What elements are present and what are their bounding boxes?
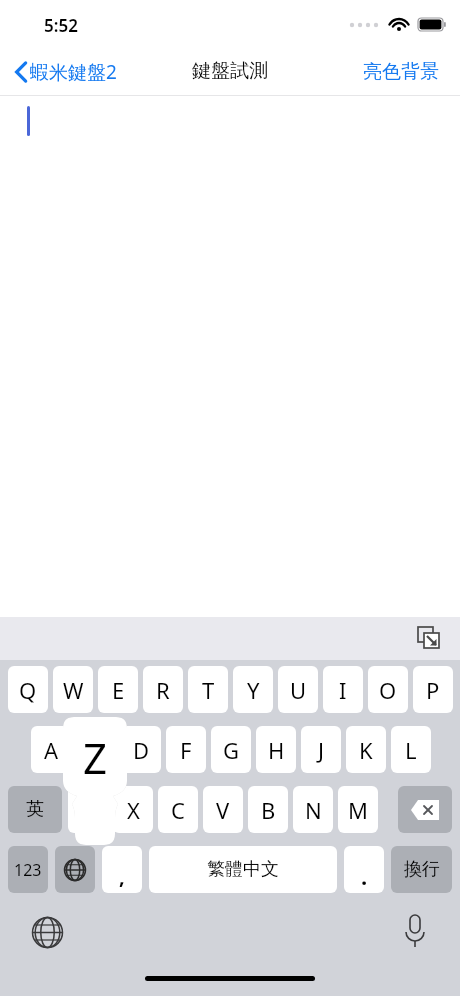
button[interactable]: Next keyboard (55, 846, 95, 893)
staticText: E (112, 675, 125, 705)
button[interactable]: Q (8, 666, 48, 713)
button[interactable]: . (344, 846, 384, 893)
button[interactable]: 換行 (391, 846, 452, 893)
staticText: K (359, 735, 373, 765)
staticText: H (268, 735, 285, 765)
staticText: X (127, 795, 140, 825)
button[interactable]: L (391, 726, 431, 773)
staticText: . (361, 861, 368, 891)
staticText: Y (247, 675, 260, 705)
button[interactable]: Switch keyboard layout (408, 619, 452, 659)
staticText: R (156, 675, 170, 705)
button[interactable]: G (211, 726, 251, 773)
button[interactable]: O (368, 666, 408, 713)
staticText: D (133, 735, 150, 765)
button[interactable]: M (338, 786, 378, 833)
button[interactable]: S (76, 726, 116, 773)
staticText: V (216, 795, 230, 825)
staticText: C (171, 795, 185, 825)
button[interactable]: X (113, 786, 153, 833)
staticText: 蝦米鍵盤2 (30, 59, 117, 85)
staticText: 繁體中文 (207, 858, 279, 881)
staticText: O (379, 675, 397, 705)
button[interactable]: 亮色背景 (352, 53, 450, 91)
button[interactable]: U (278, 666, 318, 713)
button[interactable]: D (121, 726, 161, 773)
staticText: 換行 (404, 858, 440, 881)
staticText: 亮色背景 (363, 60, 439, 84)
button[interactable]: Dictation (390, 907, 440, 957)
button[interactable]: T (188, 666, 228, 713)
button[interactable]: J (301, 726, 341, 773)
button[interactable]: A (31, 726, 71, 773)
staticText: B (261, 795, 276, 825)
button[interactable]: P (413, 666, 453, 713)
staticText: , (119, 863, 125, 890)
staticText: 5:52 (44, 14, 78, 37)
button[interactable]: C (158, 786, 198, 833)
staticText: P (426, 675, 440, 705)
staticText: 123 (14, 859, 42, 881)
staticText: J (318, 735, 325, 765)
button[interactable]: N (293, 786, 333, 833)
button[interactable]: V (203, 786, 243, 833)
button[interactable]: Z (60, 729, 130, 784)
staticText: I (339, 675, 347, 705)
staticText: T (202, 675, 215, 705)
staticText: M (348, 795, 368, 825)
button[interactable]: F (166, 726, 206, 773)
button[interactable]: W (53, 666, 93, 713)
staticText: G (223, 735, 240, 765)
button[interactable]: I (323, 666, 363, 713)
staticText: U (290, 675, 307, 705)
staticText: 鍵盤試測 (0, 59, 460, 996)
button[interactable]: Y (233, 666, 273, 713)
staticText: F (180, 735, 192, 765)
button[interactable]: 英 (8, 786, 62, 833)
button[interactable]: 蝦米鍵盤2 (8, 53, 138, 91)
staticText: S (90, 735, 103, 765)
staticText: N (305, 795, 322, 825)
button[interactable]: K (346, 726, 386, 773)
staticText: 英 (26, 798, 44, 821)
button[interactable]: Backspace (398, 786, 452, 833)
staticText: Q (19, 675, 37, 705)
staticText: A (44, 735, 59, 765)
button[interactable]: , (102, 846, 142, 893)
button[interactable]: B (248, 786, 288, 833)
staticText: L (405, 735, 417, 765)
button[interactable]: R (143, 666, 183, 713)
button[interactable]: E (98, 666, 138, 713)
staticText: W (63, 675, 84, 705)
button[interactable]: 繁體中文 (149, 846, 337, 893)
button[interactable]: Change keyboard (22, 907, 72, 957)
button[interactable]: 123 (8, 846, 48, 893)
button[interactable]: H (256, 726, 296, 773)
